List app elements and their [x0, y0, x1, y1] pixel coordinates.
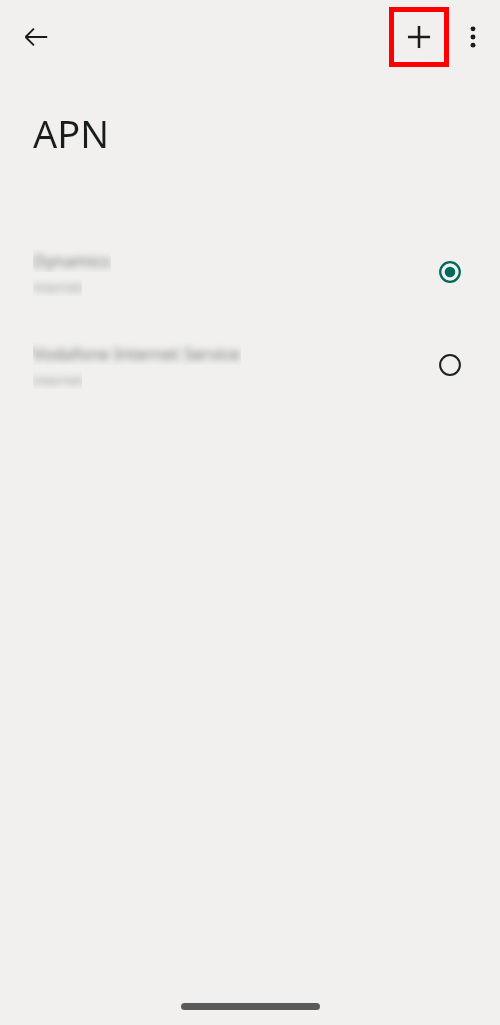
- button[interactable]: Selected APN: [426, 248, 474, 296]
- button[interactable]: Add APN: [389, 7, 449, 67]
- staticText: internet: [33, 278, 82, 296]
- staticText: Dynamics: [33, 249, 111, 272]
- button[interactable]: More options: [449, 13, 497, 61]
- button[interactable]: Dynamics: [0, 237, 500, 307]
- staticText: internet: [33, 371, 82, 389]
- button[interactable]: Back: [12, 13, 60, 61]
- button[interactable]: Vodafone Internet Service: [0, 330, 500, 400]
- button[interactable]: Select APN: [426, 341, 474, 389]
- staticText: Vodafone Internet Service: [33, 342, 241, 365]
- staticText: APN: [33, 107, 110, 159]
